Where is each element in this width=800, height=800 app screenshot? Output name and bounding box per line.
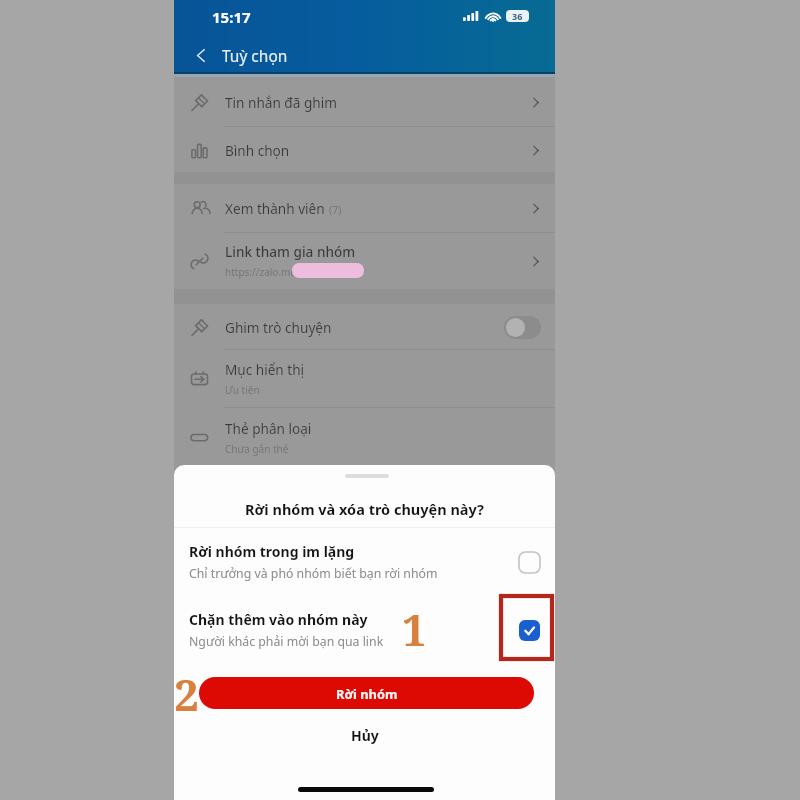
staticText: Hủy <box>351 726 379 745</box>
button[interactable]: Bình chọn <box>174 126 555 174</box>
staticText: Tin nhắn đã ghim <box>225 93 337 112</box>
staticText: 36 <box>512 10 523 22</box>
staticText: (7) <box>329 203 342 217</box>
staticText: Xem thành viên <box>225 199 325 218</box>
staticText: Người khác phải mời bạn qua link <box>189 633 384 650</box>
staticText: Link tham gia nhóm <box>225 242 356 261</box>
staticText: Rời nhóm và xóa trò chuyện này? <box>174 499 555 519</box>
staticText: Chỉ trưởng và phó nhóm biết bạn rời nhóm <box>189 565 438 582</box>
button[interactable]: Thẻ phân loại <box>174 409 555 465</box>
button[interactable]: Link tham gia nhóm <box>174 233 555 289</box>
staticText: Thẻ phân loại <box>225 419 312 438</box>
button[interactable]: Checked <box>519 620 540 641</box>
button[interactable]: Tin nhắn đã ghim <box>174 78 555 126</box>
staticText: Ghim trò chuyện <box>225 318 332 337</box>
button[interactable]: Xem thành viên <box>174 184 555 232</box>
staticText: https://zalo.me <box>225 265 297 279</box>
button[interactable]: Unchecked <box>519 552 540 573</box>
staticText: Bình chọn <box>225 141 290 160</box>
button[interactable]: Mục hiển thị <box>174 350 555 406</box>
button[interactable]: Rời nhóm <box>199 677 534 709</box>
button[interactable]: Chặn thêm vào nhóm này <box>174 597 555 663</box>
staticText: Chặn thêm vào nhóm này <box>189 610 368 629</box>
staticText: Chưa gắn thẻ <box>225 442 289 456</box>
staticText: Rời nhóm <box>336 685 398 702</box>
button[interactable]: Hủy <box>174 717 555 753</box>
button[interactable]: Pin conversation toggle <box>504 316 541 339</box>
staticText: 1 <box>402 600 427 659</box>
button[interactable]: Rời nhóm trong im lặng <box>174 529 555 595</box>
staticText: Tuỳ chọn <box>222 45 288 66</box>
staticText: 2 <box>174 664 199 724</box>
staticText: Ưu tiên <box>225 383 260 397</box>
staticText: Rời nhóm trong im lặng <box>189 542 355 561</box>
button[interactable]: Ghim trò chuyện <box>174 304 555 350</box>
staticText: Mục hiển thị <box>225 360 305 379</box>
button[interactable]: Back <box>186 40 216 70</box>
staticText: 15:17 <box>212 7 251 27</box>
